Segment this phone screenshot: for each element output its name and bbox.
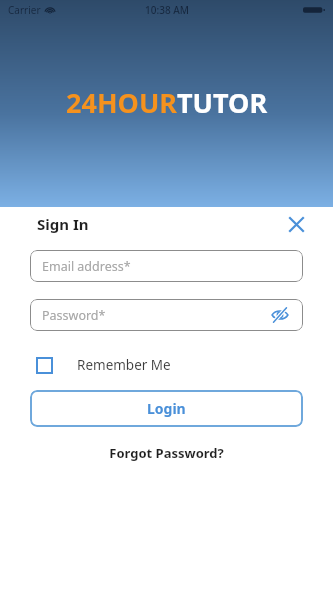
staticText: Email address* [42,258,131,275]
button[interactable]: Show password [269,304,291,326]
staticText: 10:38 AM [145,3,189,17]
staticText: Login [147,399,186,418]
button[interactable]: Login [30,390,303,427]
staticText: 24HOURTUTOR [66,84,268,121]
staticText: Sign In [37,214,89,234]
button[interactable]: Email address* [30,250,303,282]
staticText: Password* [42,307,106,324]
staticText: Carrier [8,3,41,17]
button[interactable]: Remember Me [30,354,177,376]
button[interactable]: Password* [30,299,303,331]
staticText: Remember Me [77,356,171,374]
button[interactable]: Forgot Password? [103,438,230,468]
button[interactable]: Close [283,211,309,237]
